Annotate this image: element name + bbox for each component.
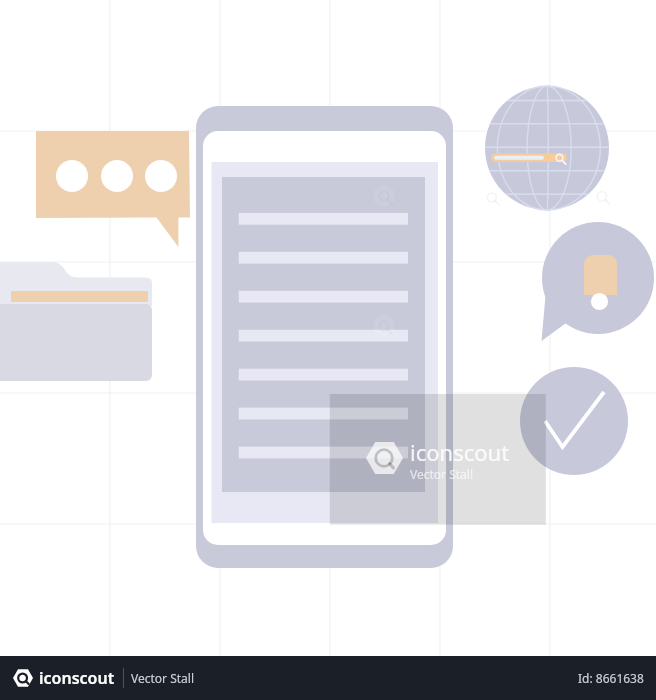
staticText: Vector Stall bbox=[410, 466, 474, 482]
staticText: Id: 8661638 bbox=[578, 670, 644, 686]
staticText: Vector Stall bbox=[131, 670, 195, 686]
staticText: iconscout bbox=[39, 667, 115, 689]
staticText: iconscout bbox=[410, 437, 510, 467]
